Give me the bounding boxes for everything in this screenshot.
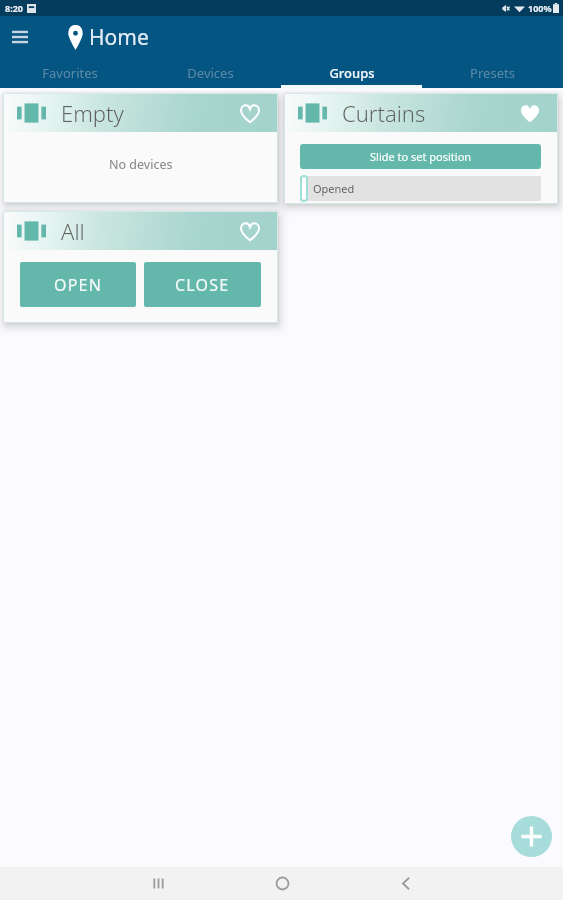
staticText: Presets [470,64,515,82]
button[interactable]: Devices [140,58,281,88]
staticText: OPEN [54,274,103,296]
button[interactable]: Favorites [0,58,140,88]
button[interactable]: OPEN [20,262,136,307]
staticText: Favorites [42,64,98,82]
button[interactable]: Home [220,867,344,900]
staticText: Curtains [342,98,426,128]
button[interactable]: Add [511,816,552,857]
button[interactable]: Presets [422,58,563,88]
button[interactable]: Favorite [236,217,263,244]
button[interactable]: Opened [300,176,541,201]
staticText: Empty [61,98,124,128]
button[interactable]: Back [344,867,468,900]
staticText: 8:20 [5,2,23,14]
staticText: Devices [187,64,234,82]
staticText: Slide to set position [370,149,472,164]
button[interactable]: Empty [3,93,278,132]
staticText: Home [89,23,149,52]
button[interactable]: Favorite [236,99,263,126]
button[interactable]: Groups [281,58,422,88]
staticText: No devices [109,156,173,173]
staticText: Opened [313,181,355,196]
button[interactable]: Menu [4,21,36,53]
staticText: Groups [329,64,375,82]
button[interactable]: Curtains [284,93,558,132]
button[interactable]: CLOSE [144,262,261,307]
staticText: 100% [528,2,552,14]
staticText: CLOSE [175,274,230,296]
button[interactable]: Slide to set position [300,144,541,169]
staticText: All [61,216,85,246]
button[interactable]: All [3,211,278,250]
button[interactable]: Recents [96,867,220,900]
button[interactable]: Favorite [516,99,543,126]
